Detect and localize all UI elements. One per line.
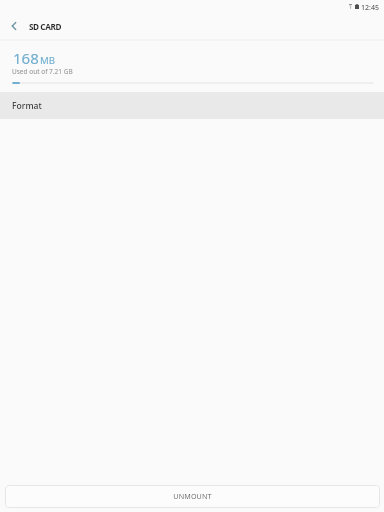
button[interactable]: Back <box>2 14 26 38</box>
staticText: SD CARD <box>29 21 61 32</box>
staticText: 168 <box>13 48 39 68</box>
staticText: 12:45 <box>361 3 379 10</box>
button[interactable]: UNMOUNT <box>5 485 380 508</box>
staticText: Format <box>12 100 42 112</box>
staticText: MB <box>40 54 55 67</box>
staticText: UNMOUNT <box>173 491 212 501</box>
staticText: Used out of 7.21 GB <box>12 67 73 76</box>
button[interactable]: Format <box>0 92 384 119</box>
